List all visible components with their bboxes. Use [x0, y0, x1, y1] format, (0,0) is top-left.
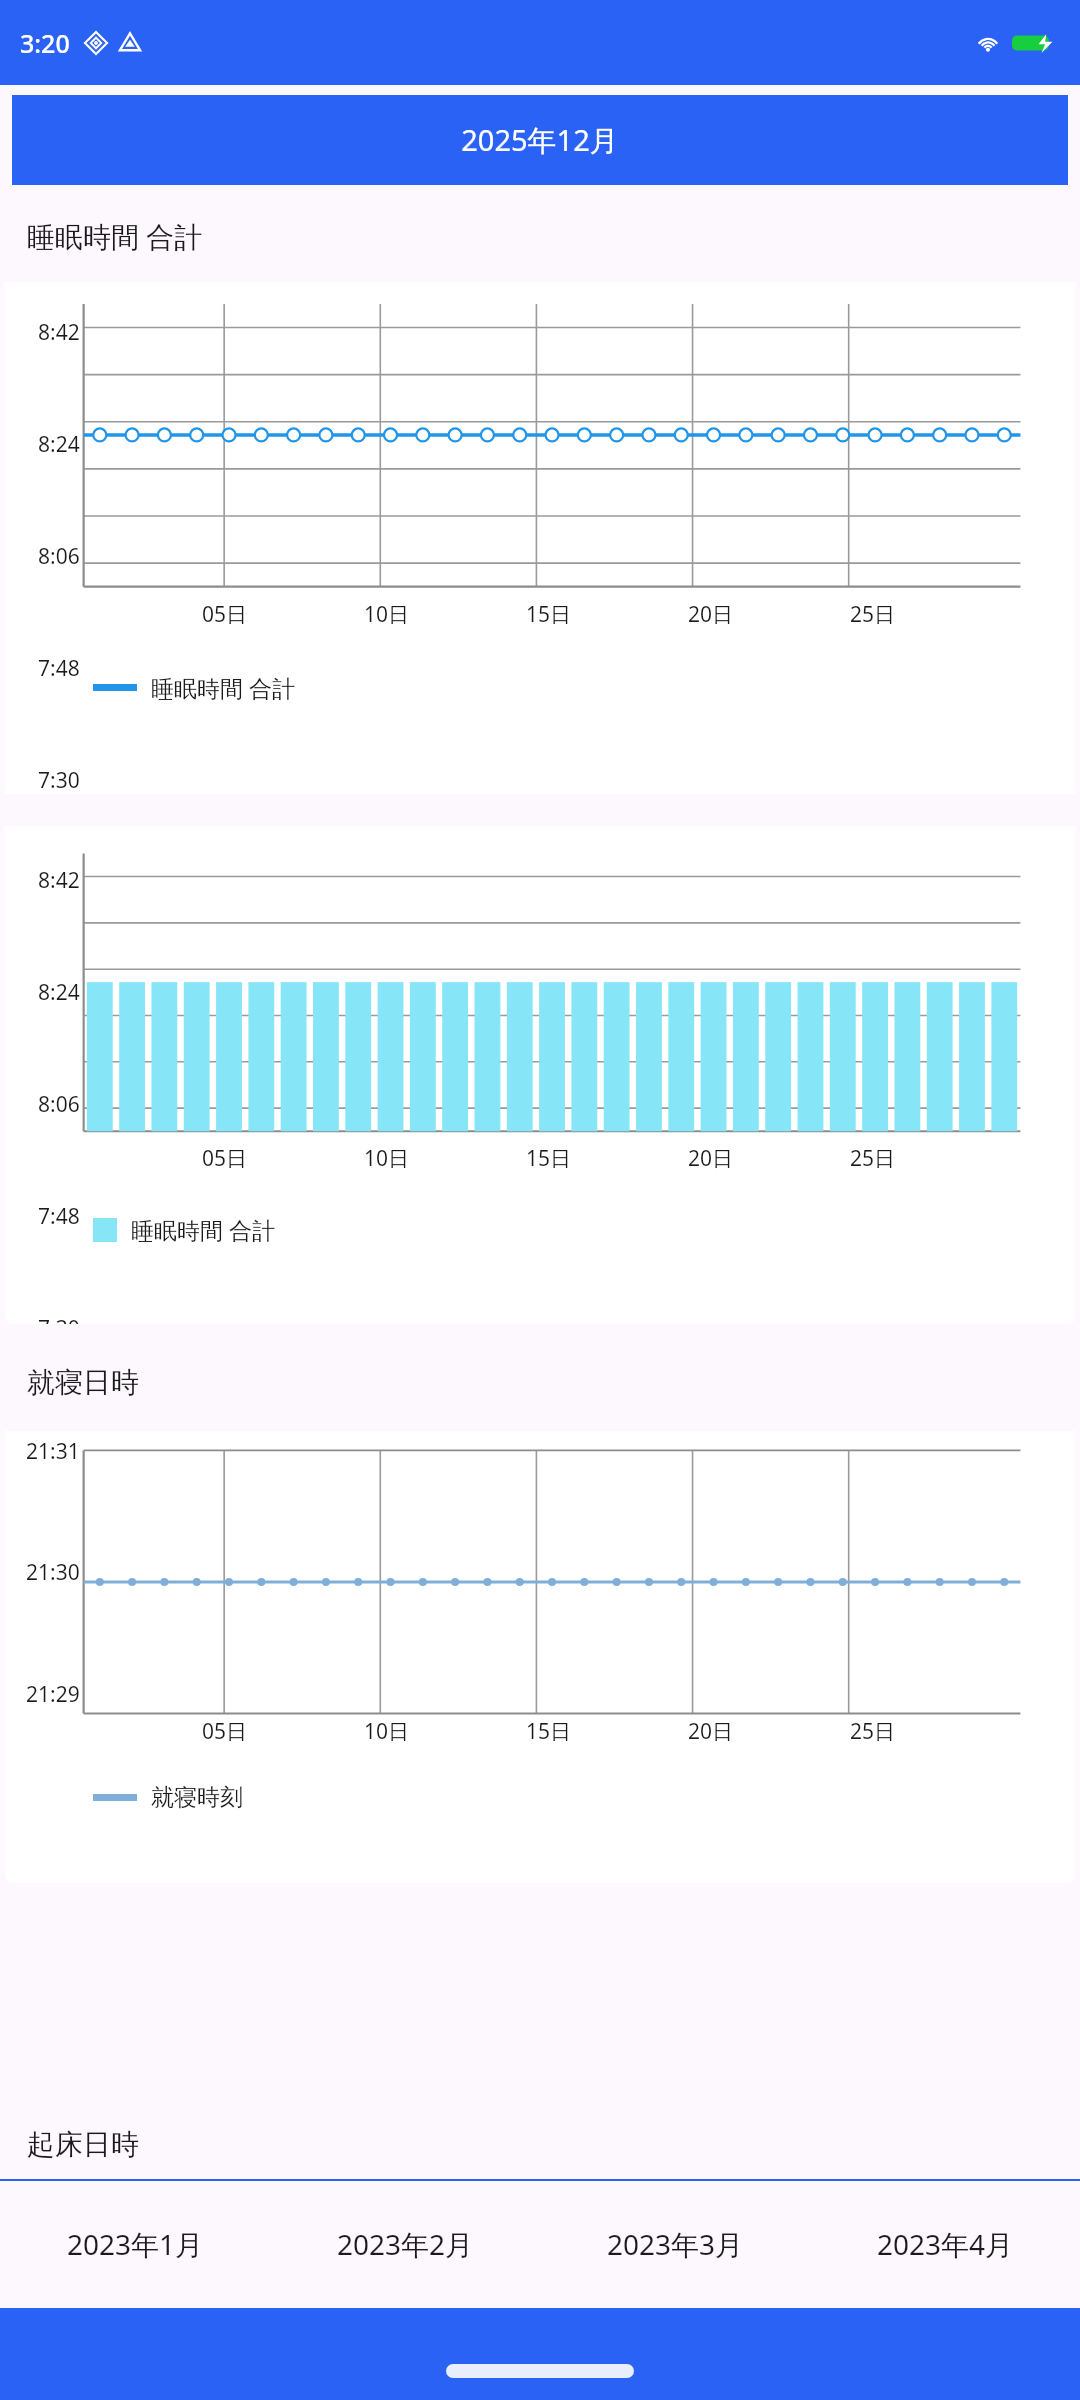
staticText: 2023年3月 — [607, 2225, 744, 2263]
button[interactable]: Home gesture bar — [446, 2364, 634, 2378]
staticText: 7:48 — [38, 654, 80, 683]
staticText: 20日 — [688, 600, 734, 629]
staticText: 睡眠時間 合計 — [131, 1214, 275, 1245]
staticText: 7:30 — [38, 766, 80, 795]
staticText: 10日 — [364, 1144, 410, 1173]
button[interactable]: 2023年2月 — [270, 2180, 540, 2308]
staticText: 8:24 — [38, 978, 80, 1007]
staticText: 7:30 — [38, 1314, 80, 1324]
staticText: 8:06 — [38, 1090, 80, 1119]
staticText: 05日 — [202, 1717, 248, 1746]
staticText: 20日 — [688, 1717, 734, 1746]
staticText: 7:48 — [38, 1202, 80, 1231]
staticText: 05日 — [202, 1144, 248, 1173]
staticText: 2023年2月 — [337, 2225, 474, 2263]
staticText: 就寝日時 — [27, 1365, 139, 1400]
staticText: 25日 — [850, 1144, 896, 1173]
staticText: 21:31 — [26, 1437, 80, 1466]
staticText: 8:06 — [38, 542, 80, 571]
staticText: 15日 — [526, 1717, 572, 1746]
staticText: 3:20 — [20, 26, 70, 60]
staticText: 25日 — [850, 600, 896, 629]
staticText: 2023年1月 — [67, 2225, 204, 2263]
button[interactable]: 2023年1月 — [0, 2180, 270, 2308]
staticText: 15日 — [526, 1144, 572, 1173]
staticText: 8:42 — [38, 318, 80, 347]
staticText: 8:24 — [38, 430, 80, 459]
button[interactable]: 2023年3月 — [540, 2180, 810, 2308]
button[interactable]: 睡眠時間 合計 — [5, 190, 1075, 1324]
staticText: 睡眠時間 合計 — [27, 217, 203, 255]
button[interactable]: 2025年12月 — [12, 95, 1068, 185]
staticText: 21:29 — [26, 1680, 80, 1709]
staticText: 睡眠時間 合計 — [151, 672, 295, 703]
button[interactable]: 就寝日時 — [5, 1333, 1075, 1883]
staticText: 21:30 — [26, 1558, 80, 1587]
staticText: 05日 — [202, 600, 248, 629]
staticText: 2023年4月 — [877, 2225, 1014, 2263]
staticText: 起床日時 — [27, 2127, 139, 2162]
button[interactable]: 2023年4月 — [810, 2180, 1080, 2308]
staticText: 20日 — [688, 1144, 734, 1173]
staticText: 15日 — [526, 600, 572, 629]
staticText: 2025年12月 — [461, 120, 619, 160]
staticText: 10日 — [364, 1717, 410, 1746]
staticText: 7:12 — [38, 878, 80, 907]
staticText: 25日 — [850, 1717, 896, 1746]
staticText: 8:42 — [38, 866, 80, 895]
staticText: 就寝時刻 — [151, 1783, 243, 1812]
staticText: 10日 — [364, 600, 410, 629]
